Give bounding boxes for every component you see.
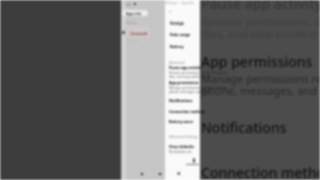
staticText: Uninstall bbox=[130, 31, 147, 36]
staticText: Manage permissions re bbox=[201, 71, 320, 86]
staticText: Storage bbox=[170, 21, 184, 26]
staticText: Battery bbox=[170, 44, 184, 49]
staticText: Clear defaults bbox=[169, 144, 194, 149]
staticText: Pause app activity bbox=[201, 0, 320, 13]
staticText: Advanced settings bbox=[169, 134, 198, 138]
staticText: App info bbox=[126, 11, 142, 16]
staticText: ← bbox=[169, 9, 173, 14]
staticText: Settings • App info bbox=[165, 1, 195, 5]
staticText: Uninstall bbox=[130, 31, 147, 36]
staticText: No defaults set bbox=[169, 150, 192, 154]
staticText: phone, messages, and bbox=[201, 83, 320, 98]
staticText: App info bbox=[126, 11, 142, 16]
staticText: Connection method bbox=[169, 109, 205, 114]
staticText: 9:41 bbox=[125, 2, 132, 7]
staticText: Clear defaults bbox=[169, 144, 194, 149]
staticText: Connection metho bbox=[201, 163, 320, 180]
staticText: Pause app activity bbox=[169, 65, 202, 70]
staticText: Data usage bbox=[170, 32, 191, 37]
staticText: Notifications bbox=[169, 98, 193, 103]
button[interactable]: Dim right area bbox=[200, 0, 320, 180]
staticText: Notifications bbox=[201, 118, 287, 137]
staticText: Pause app activity bbox=[169, 65, 202, 70]
staticText: Battery saver bbox=[169, 119, 194, 124]
button[interactable]: Dim left area bbox=[0, 0, 121, 180]
staticText: Data usage bbox=[170, 32, 191, 37]
staticText: Remove permissions, delete temporary bbox=[169, 71, 228, 75]
staticText: App permissions bbox=[169, 80, 199, 85]
staticText: Settings bbox=[125, 21, 137, 25]
staticText: Storage bbox=[170, 20, 184, 25]
staticText: App permissions bbox=[169, 80, 199, 85]
staticText: Manage permissions related to camera, bbox=[169, 86, 228, 90]
staticText: Connection method bbox=[169, 109, 205, 114]
staticText: Advanced bbox=[169, 60, 185, 64]
staticText: phone, messages, and more bbox=[169, 90, 211, 94]
staticText: files, and stop notifications bbox=[169, 75, 209, 79]
staticText: Notifications bbox=[169, 98, 193, 103]
staticText: Battery bbox=[170, 44, 184, 49]
staticText: App permissions bbox=[201, 52, 313, 71]
staticText: Battery saver bbox=[169, 119, 194, 124]
